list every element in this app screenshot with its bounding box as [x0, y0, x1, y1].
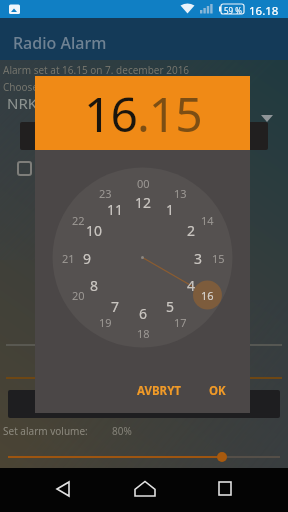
staticText: 13: [174, 186, 187, 201]
staticText: 5: [166, 297, 175, 315]
staticText: Radio Alarm: [13, 32, 107, 54]
staticText: 59 %: [224, 5, 242, 16]
staticText: 14: [201, 213, 214, 228]
staticText: 22: [72, 213, 85, 228]
staticText: 18: [137, 326, 150, 341]
staticText: 10: [86, 221, 103, 239]
staticText: 12: [135, 193, 152, 211]
staticText: 16.18: [249, 3, 279, 19]
staticText: 11: [107, 200, 124, 218]
staticText: 17: [174, 315, 187, 330]
button[interactable]: AVBRYT: [127, 378, 191, 404]
staticText: AVBRYT: [137, 383, 181, 399]
staticText: 1: [166, 200, 175, 218]
staticText: 7: [111, 297, 120, 315]
staticText: 21: [62, 251, 75, 266]
staticText: 19: [99, 315, 112, 330]
button[interactable]: [192, 468, 288, 512]
staticText: 8: [90, 276, 99, 294]
staticText: 16: [84, 81, 137, 146]
staticText: .15: [137, 81, 202, 146]
staticText: NRK: [7, 93, 38, 113]
staticText: 3: [194, 249, 203, 267]
staticText: 20: [72, 288, 85, 303]
staticText: Set alarm volume:: [3, 424, 88, 438]
staticText: 6: [139, 304, 148, 322]
staticText: 80%: [112, 424, 132, 438]
staticText: 16: [201, 288, 214, 303]
staticText: 4: [187, 276, 196, 294]
staticText: 00: [137, 176, 150, 191]
button[interactable]: OK: [195, 378, 239, 404]
button[interactable]: [96, 468, 192, 512]
button[interactable]: [0, 468, 96, 512]
staticText: 23: [99, 186, 112, 201]
staticText: Alarm set at 16.15 on 7. december 2016: [3, 63, 190, 77]
staticText: OK: [209, 383, 226, 399]
staticText: 2: [187, 221, 196, 239]
staticText: Choose radio channel:: [3, 80, 108, 94]
staticText: 9: [83, 249, 92, 267]
staticText: 15: [212, 251, 225, 266]
